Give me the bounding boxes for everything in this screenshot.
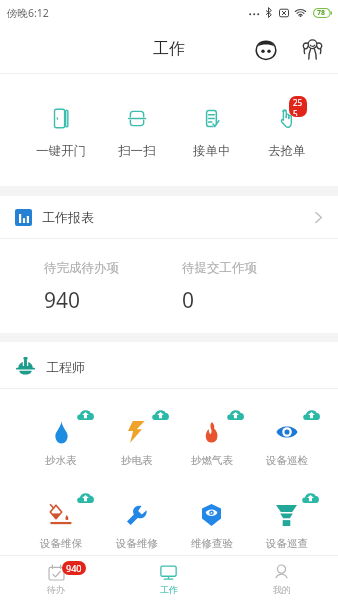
staticText: 78 bbox=[317, 8, 326, 18]
staticText: 抄燃气表 bbox=[191, 454, 233, 467]
button[interactable]: 待提交工作项 bbox=[182, 260, 257, 315]
staticText: 扫一扫 bbox=[118, 143, 156, 159]
button[interactable]: 255 bbox=[249, 74, 324, 159]
staticText: 255 bbox=[293, 97, 303, 116]
staticText: 待完成待办项 bbox=[44, 260, 119, 276]
button[interactable]: Service bbox=[296, 33, 329, 66]
staticText: 0 bbox=[182, 286, 195, 315]
staticText: 维修查验 bbox=[191, 537, 233, 550]
staticText: 接单中 bbox=[193, 143, 231, 159]
staticText: 设备巡检 bbox=[266, 454, 308, 467]
staticText: 抄水表 bbox=[45, 454, 77, 467]
staticText: 工作报表 bbox=[42, 209, 94, 225]
button[interactable]: 抄燃气表 bbox=[174, 389, 249, 467]
staticText: 工作 bbox=[153, 39, 185, 59]
staticText: 待提交工作项 bbox=[182, 260, 257, 276]
button[interactable]: 抄水表 bbox=[23, 389, 99, 467]
staticText: 抄电表 bbox=[121, 454, 153, 467]
button[interactable]: 940 bbox=[0, 556, 112, 600]
staticText: 设备巡查 bbox=[266, 537, 308, 550]
staticText: 设备维修 bbox=[116, 537, 158, 550]
staticText: 我的 bbox=[273, 584, 291, 595]
button[interactable]: 工作报表 bbox=[0, 196, 338, 238]
staticText: 设备维保 bbox=[40, 537, 82, 550]
staticText: 工程师 bbox=[46, 359, 85, 375]
button[interactable]: 设备维修 bbox=[99, 472, 174, 550]
staticText: 去抢单 bbox=[268, 143, 306, 159]
staticText: 工作 bbox=[160, 584, 178, 595]
button[interactable]: 工作 bbox=[112, 556, 225, 600]
staticText: 傍晚6:12 bbox=[7, 6, 49, 20]
button[interactable]: 我的 bbox=[225, 556, 338, 600]
button[interactable]: 设备巡检 bbox=[249, 389, 324, 467]
staticText: 待办 bbox=[47, 584, 65, 595]
staticText: 940 bbox=[66, 562, 82, 574]
button[interactable]: 接单中 bbox=[174, 74, 249, 159]
button[interactable]: 维修查验 bbox=[174, 472, 249, 550]
button[interactable]: 抄电表 bbox=[99, 389, 174, 467]
button[interactable]: 设备维保 bbox=[23, 472, 99, 550]
button[interactable]: 待完成待办项 bbox=[44, 260, 119, 315]
staticText: 940 bbox=[44, 286, 81, 315]
button[interactable]: Avatar bbox=[249, 33, 282, 66]
button[interactable]: 设备巡查 bbox=[249, 472, 324, 550]
button[interactable]: 一键开门 bbox=[23, 74, 99, 159]
staticText: 一键开门 bbox=[36, 143, 86, 159]
button[interactable]: 扫一扫 bbox=[99, 74, 174, 159]
